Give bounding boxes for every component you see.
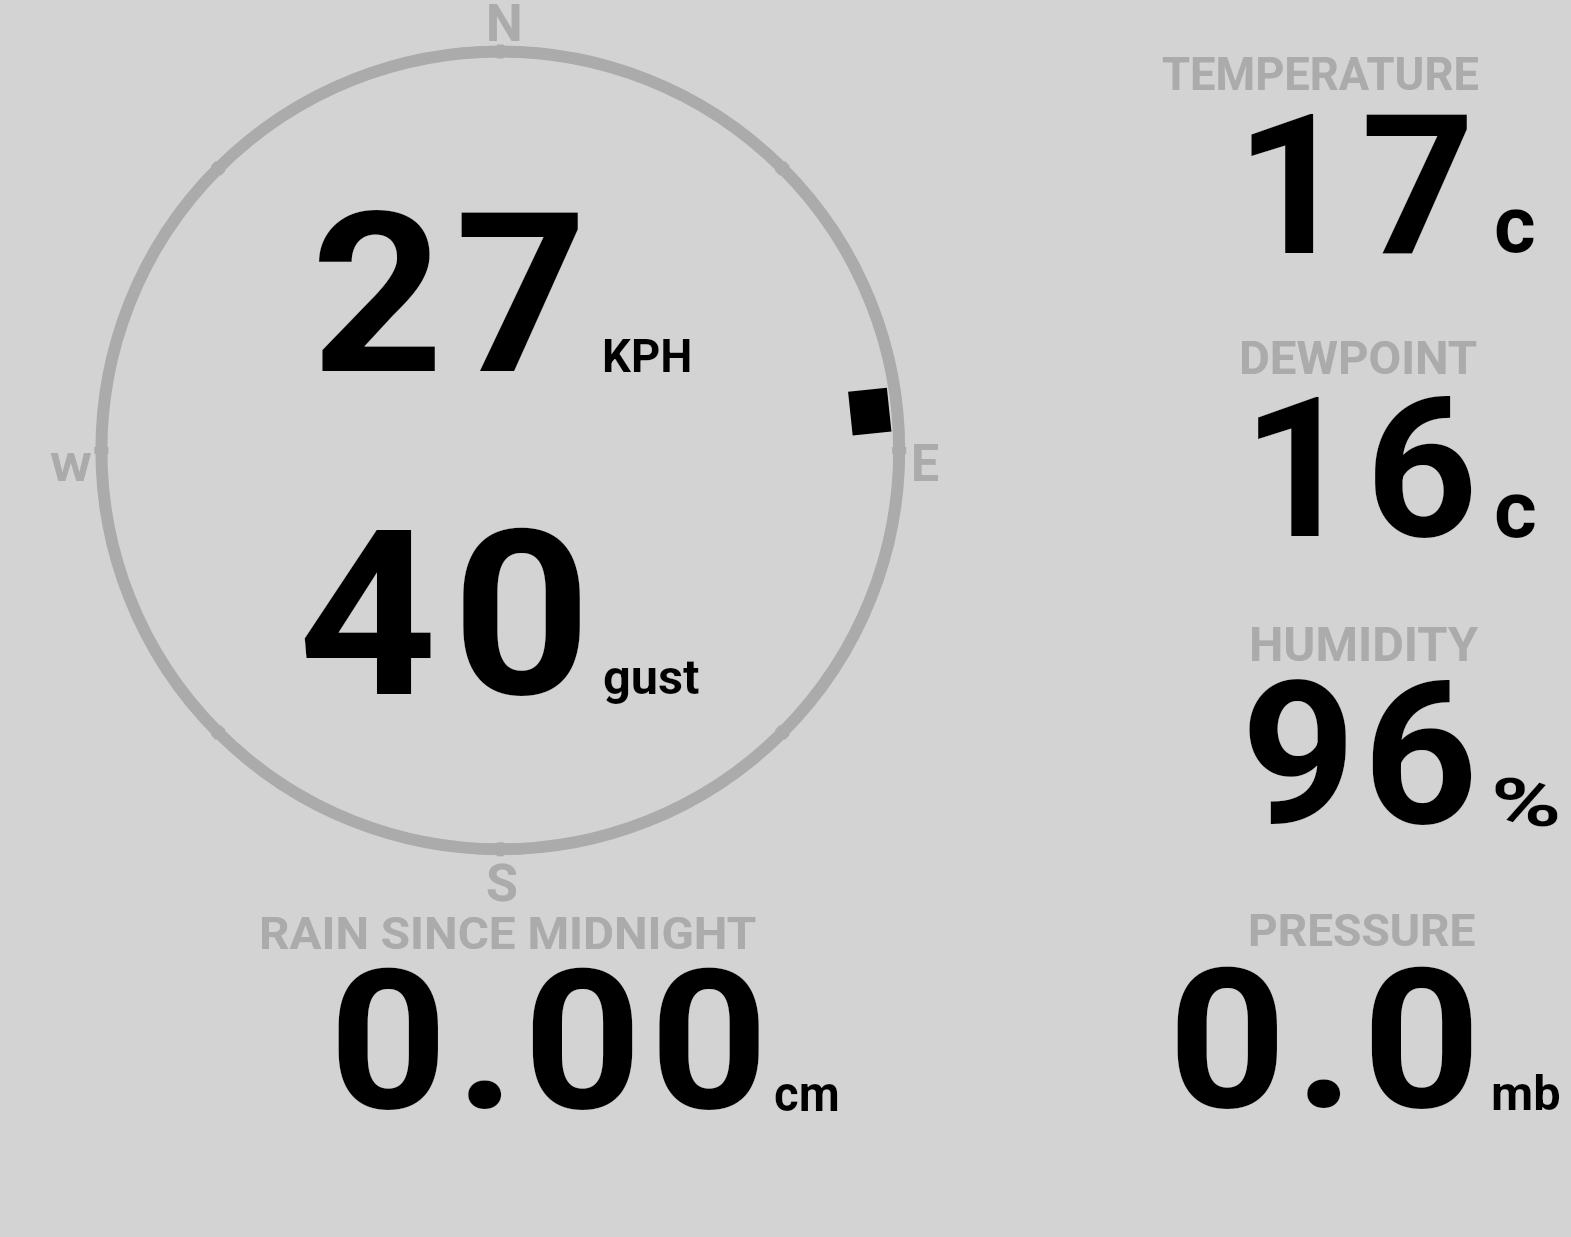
staticText: 96 [1241, 639, 1485, 872]
staticText: E [911, 433, 939, 493]
staticText: gust [603, 649, 700, 706]
staticText: N [486, 0, 523, 53]
staticText: mb [1491, 1066, 1561, 1122]
staticText: 0.0 [1168, 926, 1490, 1155]
staticText: RAIN SINCE MIDNIGHT [259, 907, 757, 960]
button[interactable]: Pressure 0.0 mb [1150, 898, 1570, 1123]
button[interactable]: Wind 27 KPH gusting 40, direction east [95, 45, 905, 855]
button[interactable]: Dewpoint 16 c [1150, 325, 1570, 555]
staticText: TEMPERATURE [1162, 47, 1479, 101]
button[interactable]: Rain since midnight 0.00 cm [240, 900, 860, 1120]
staticText: DEWPOINT [1239, 331, 1478, 385]
staticText: c [1494, 463, 1537, 557]
staticText: % [1491, 764, 1562, 843]
button[interactable]: Temperature 17 c [1150, 40, 1570, 270]
staticText: cm [774, 1064, 840, 1123]
staticText: KPH [602, 329, 693, 383]
staticText: 16 [1242, 356, 1490, 584]
staticText: S [486, 853, 518, 913]
staticText: 27 [311, 165, 599, 426]
staticText: 0.00 [329, 927, 776, 1156]
staticText: 17 [1235, 71, 1487, 300]
staticText: PRESSURE [1248, 904, 1476, 957]
staticText: 40 [298, 481, 607, 750]
staticText: HUMIDITY [1249, 617, 1479, 673]
staticText: c [1494, 178, 1536, 272]
button[interactable]: Humidity 96 percent [1150, 610, 1570, 840]
staticText: W [50, 445, 93, 491]
